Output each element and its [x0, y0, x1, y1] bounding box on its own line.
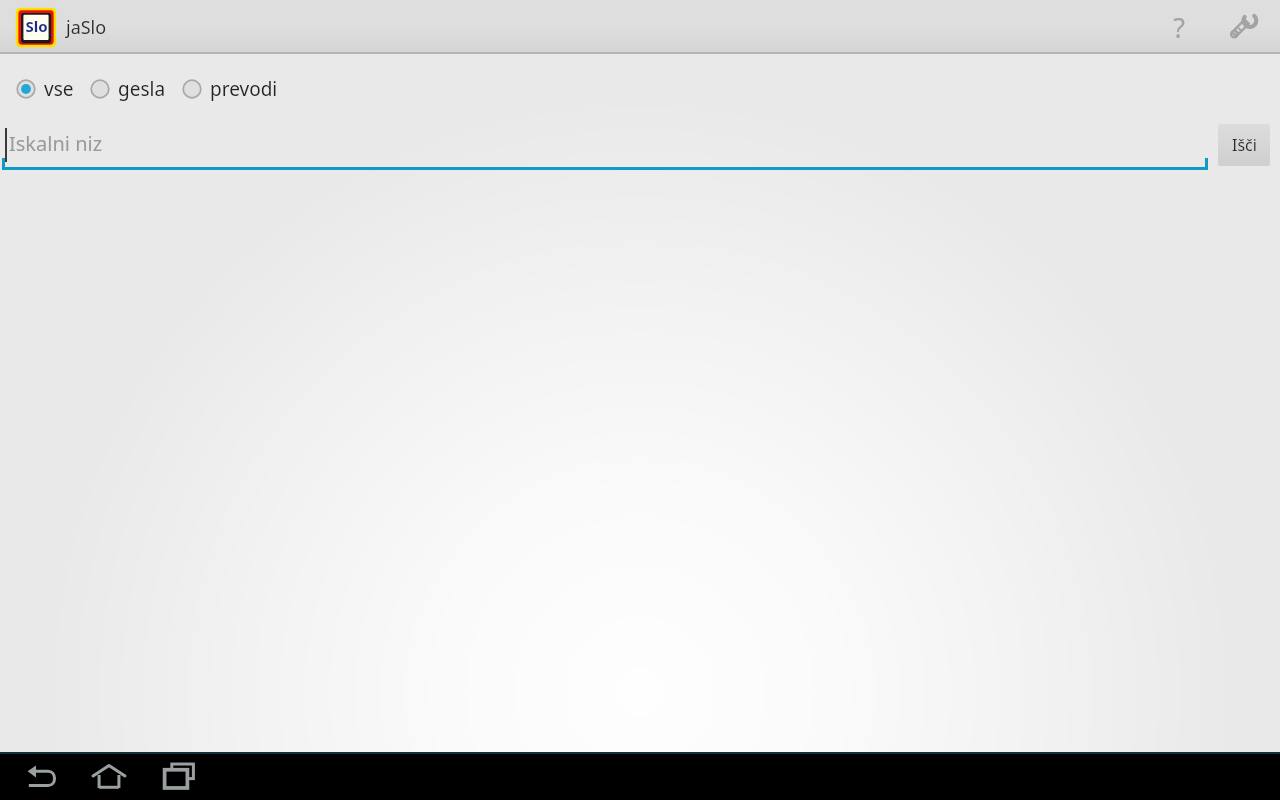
button[interactable]: prevodi	[178, 70, 282, 108]
staticText: ?	[1173, 9, 1185, 46]
staticText: jaSlo	[66, 15, 107, 40]
staticText: gesla	[118, 76, 166, 102]
button[interactable]: Settings	[1216, 0, 1270, 54]
staticText: Slo	[25, 16, 48, 36]
staticText: prevodi	[210, 76, 278, 102]
button[interactable]: Home	[74, 753, 144, 799]
staticText: Iskalni niz	[9, 130, 103, 157]
button[interactable]: Back	[10, 753, 74, 799]
staticText: Išči	[1232, 134, 1257, 156]
button[interactable]: vse	[12, 70, 78, 108]
button[interactable]: Recent apps	[144, 753, 214, 799]
button[interactable]: jaSlo	[14, 5, 58, 49]
button[interactable]: Help	[1152, 0, 1206, 54]
button[interactable]: Išči	[1218, 124, 1270, 166]
button[interactable]: Iskalni niz	[0, 120, 1210, 172]
button[interactable]: gesla	[86, 70, 170, 108]
staticText: vse	[44, 76, 74, 102]
